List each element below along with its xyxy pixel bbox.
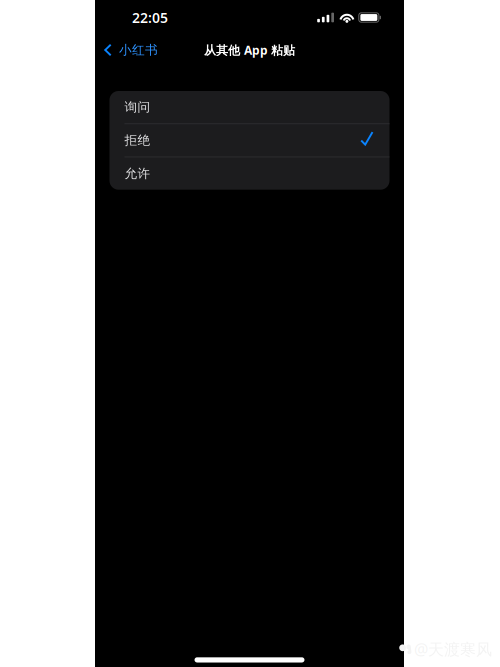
staticText: 从其他 App 粘贴	[204, 42, 295, 58]
staticText: 询问	[124, 99, 150, 115]
button[interactable]: 询问	[109, 91, 389, 123]
button[interactable]: 拒绝	[109, 124, 389, 156]
staticText: 22:05	[132, 8, 168, 27]
staticText: 允许	[124, 166, 150, 181]
staticText: 小红书	[119, 42, 158, 58]
staticText: @天渡寒风	[414, 638, 492, 660]
button[interactable]: 允许	[109, 157, 389, 190]
staticText: 拒绝	[124, 132, 150, 148]
button[interactable]: 返回 小红书	[95, 35, 168, 65]
